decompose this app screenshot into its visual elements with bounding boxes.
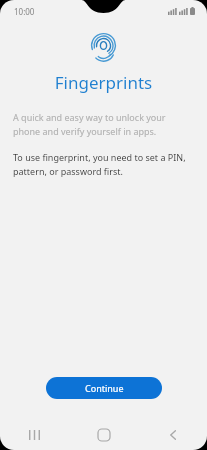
button[interactable]: Continue (46, 377, 162, 399)
button[interactable]: Recent apps (0, 420, 69, 450)
button[interactable]: Home (69, 420, 138, 450)
staticText: A quick and easy way to unlock your phon… (13, 111, 166, 138)
staticText: Fingerprints (0, 71, 207, 94)
button[interactable]: Back (138, 420, 207, 450)
staticText: To use fingerprint, you need to set a PI… (13, 151, 186, 178)
staticText: 10:00 (14, 6, 35, 17)
staticText: Continue (85, 382, 124, 394)
